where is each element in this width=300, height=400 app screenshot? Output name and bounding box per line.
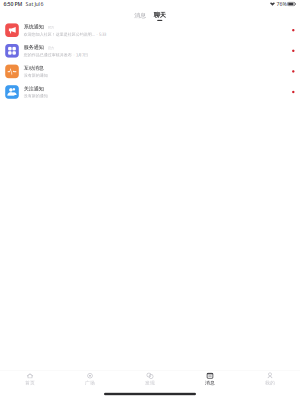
staticText: 没有新的通知	[24, 93, 48, 98]
staticText: 消息	[205, 380, 215, 386]
staticText: 服务通知	[24, 44, 44, 50]
staticText: 您的作品已通过审核并发布	[24, 52, 72, 57]
staticText: 我的	[265, 380, 275, 386]
button[interactable]: 首页	[0, 371, 60, 388]
button[interactable]: 消息	[180, 371, 240, 388]
staticText: ·	[96, 31, 97, 37]
button[interactable]: 消息	[134, 12, 146, 20]
staticText: 欢迎您加入社区！这里是社区公约说明…	[24, 31, 95, 37]
staticText: 关注通知	[24, 85, 44, 92]
staticText: 官方	[48, 46, 54, 50]
button[interactable]: 关注通知	[0, 82, 300, 102]
staticText: 消息	[134, 12, 146, 19]
staticText: 互动消息	[24, 65, 44, 71]
staticText: 官方	[48, 25, 54, 30]
button[interactable]: 服务通知	[0, 40, 300, 61]
staticText: 3月7日	[76, 52, 88, 57]
staticText: 聊天	[154, 11, 166, 19]
staticText: 系统通知	[24, 23, 44, 30]
button[interactable]: 互动消息	[0, 61, 300, 82]
staticText: 广场	[85, 380, 95, 386]
button[interactable]: 系统通知	[0, 20, 300, 40]
staticText: 76%	[275, 0, 286, 8]
button[interactable]: 我的	[240, 371, 300, 388]
staticText: 首页	[25, 380, 35, 386]
staticText: ·	[73, 52, 74, 57]
staticText: 5:33	[99, 31, 106, 37]
staticText: Sat Jul 6	[23, 0, 44, 8]
button[interactable]: 聊天	[154, 11, 166, 21]
staticText: 没有新的通知	[24, 73, 48, 78]
button[interactable]: 广场	[60, 371, 120, 388]
staticText: 6:50 PM	[4, 0, 23, 8]
button[interactable]: 发现	[120, 371, 180, 388]
staticText: 发现	[145, 380, 155, 386]
